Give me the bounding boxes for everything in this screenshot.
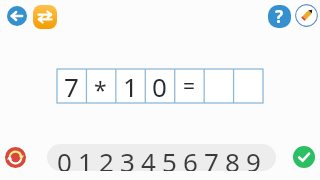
staticText: 4 [141, 144, 156, 171]
button[interactable] [5, 147, 26, 168]
staticText: 2 [99, 144, 114, 171]
staticText: = [183, 72, 196, 101]
button[interactable]: * [86, 69, 115, 103]
button[interactable]: 8 [222, 144, 243, 171]
staticText: 1 [123, 69, 138, 103]
staticText: 3 [120, 144, 135, 171]
button[interactable]: 0 [54, 144, 75, 171]
button[interactable] [293, 146, 315, 168]
button[interactable]: 5 [159, 144, 180, 171]
staticText: 1 [78, 144, 93, 171]
staticText: 8 [225, 144, 240, 171]
button[interactable]: 0 [145, 69, 174, 103]
staticText: 0 [152, 69, 167, 103]
button[interactable]: 2 [96, 144, 117, 171]
staticText: 6 [183, 144, 198, 171]
button[interactable] [7, 6, 27, 26]
button[interactable]: 9 [243, 144, 264, 171]
button[interactable]: 6 [180, 144, 201, 171]
staticText: 0 [57, 144, 72, 171]
button[interactable]: 3 [117, 144, 138, 171]
staticText: 5 [162, 144, 177, 171]
button[interactable]: ? [268, 5, 291, 28]
button[interactable]: 4 [138, 144, 159, 171]
button[interactable]: 7 [201, 144, 222, 171]
button[interactable]: 7 [57, 69, 86, 103]
button[interactable]: 1 [75, 144, 96, 171]
staticText: 7 [64, 69, 79, 103]
button[interactable]: 1 [116, 69, 145, 103]
button[interactable] [33, 5, 57, 29]
staticText: 7 [204, 144, 219, 171]
button[interactable]: = [175, 69, 204, 103]
staticText: ? [275, 5, 284, 28]
staticText: 9 [246, 144, 261, 171]
staticText: * [94, 74, 107, 105]
button[interactable] [295, 4, 318, 27]
